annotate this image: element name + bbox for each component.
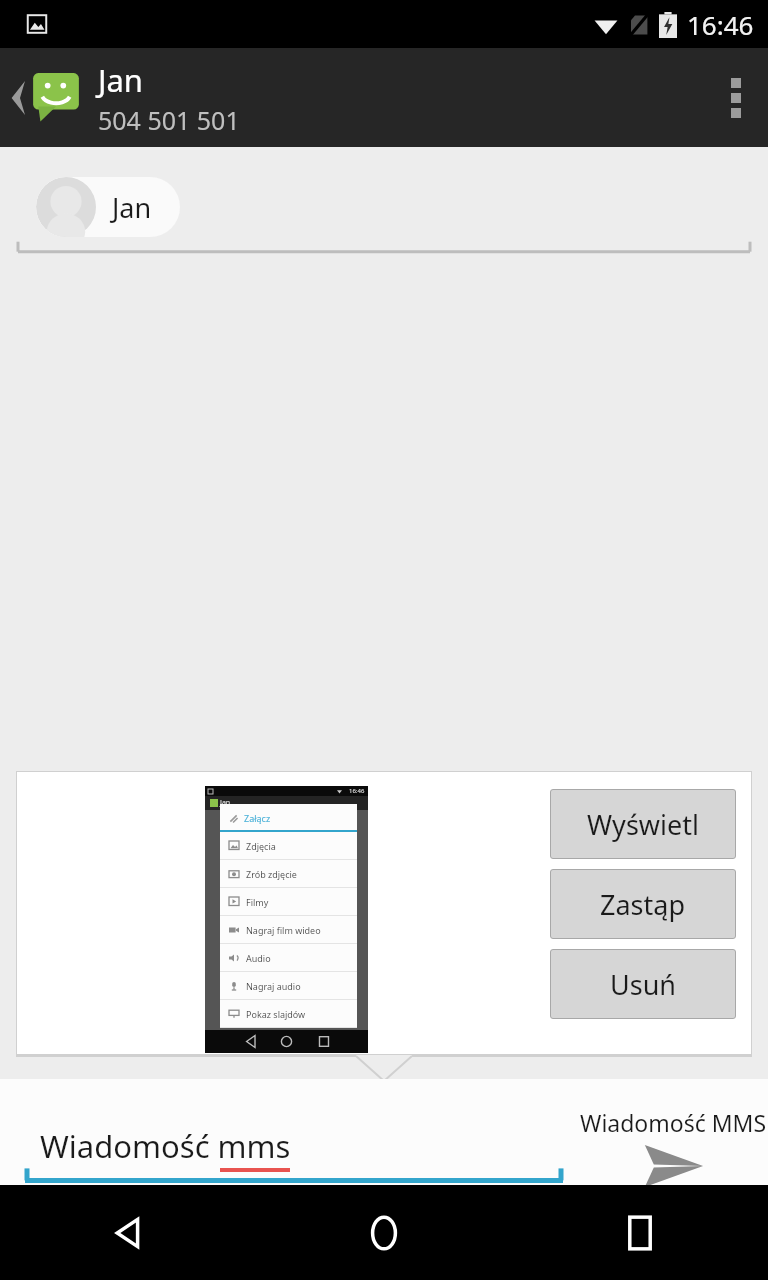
button[interactable]: Recent apps [512, 1185, 768, 1280]
button[interactable]: Wyświetl [550, 789, 736, 859]
staticText: Jan [220, 798, 231, 808]
staticText: Wyświetl [587, 806, 699, 843]
staticText: 504 501 501 [98, 103, 240, 137]
button[interactable]: Home [256, 1185, 512, 1280]
staticText: Nagraj audio [246, 980, 301, 992]
staticText: Pokaz slajdów [246, 1008, 306, 1020]
staticText: Wiadomość MMS [580, 1107, 767, 1138]
button[interactable]: Jan [36, 177, 180, 237]
button[interactable]: Zastąp [550, 869, 736, 939]
button[interactable]: Back [0, 48, 768, 147]
staticText: Jan [112, 189, 152, 226]
staticText: Zrób zdjęcie [246, 868, 297, 880]
staticText: Audio [246, 952, 271, 964]
button[interactable]: Back [0, 1185, 256, 1280]
button[interactable]: Send MMS [578, 1107, 768, 1190]
button[interactable]: Usuń [550, 949, 736, 1019]
staticText: 16:46 [687, 7, 754, 42]
staticText: Zdjęcia [246, 840, 276, 852]
staticText: Zastąp [600, 886, 686, 923]
staticText: Załącz [244, 812, 271, 824]
staticText: Nagraj film wideo [246, 924, 321, 936]
staticText: Wiadomość mms [40, 1125, 291, 1167]
staticText: Usuń [610, 966, 677, 1003]
button[interactable]: More options [704, 48, 768, 147]
staticText: Filmy [246, 896, 269, 908]
other: Back [8, 81, 28, 115]
staticText: Jan [98, 59, 144, 101]
staticText: 16:46 [349, 787, 365, 795]
button[interactable]: 16:46 [16, 771, 752, 1055]
